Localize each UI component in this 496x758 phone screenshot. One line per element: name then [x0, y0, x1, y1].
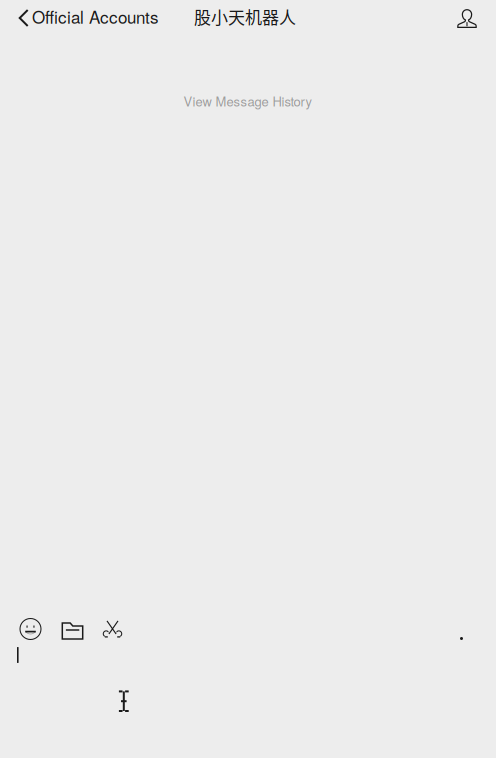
staticText: View Message History: [183, 92, 312, 110]
button[interactable]: Files: [51, 612, 92, 646]
staticText: 股小天机器人: [194, 4, 296, 29]
button[interactable]: Official Accounts: [0, 1, 167, 35]
button[interactable]: Clip: [92, 612, 133, 646]
staticText: Official Accounts: [32, 4, 159, 29]
button[interactable]: Message input field: [0, 646, 496, 664]
button[interactable]: Emoji: [10, 612, 51, 646]
button[interactable]: View Message History: [0, 92, 496, 110]
button[interactable]: More: [460, 618, 496, 640]
button[interactable]: Contact profile: [457, 1, 496, 35]
